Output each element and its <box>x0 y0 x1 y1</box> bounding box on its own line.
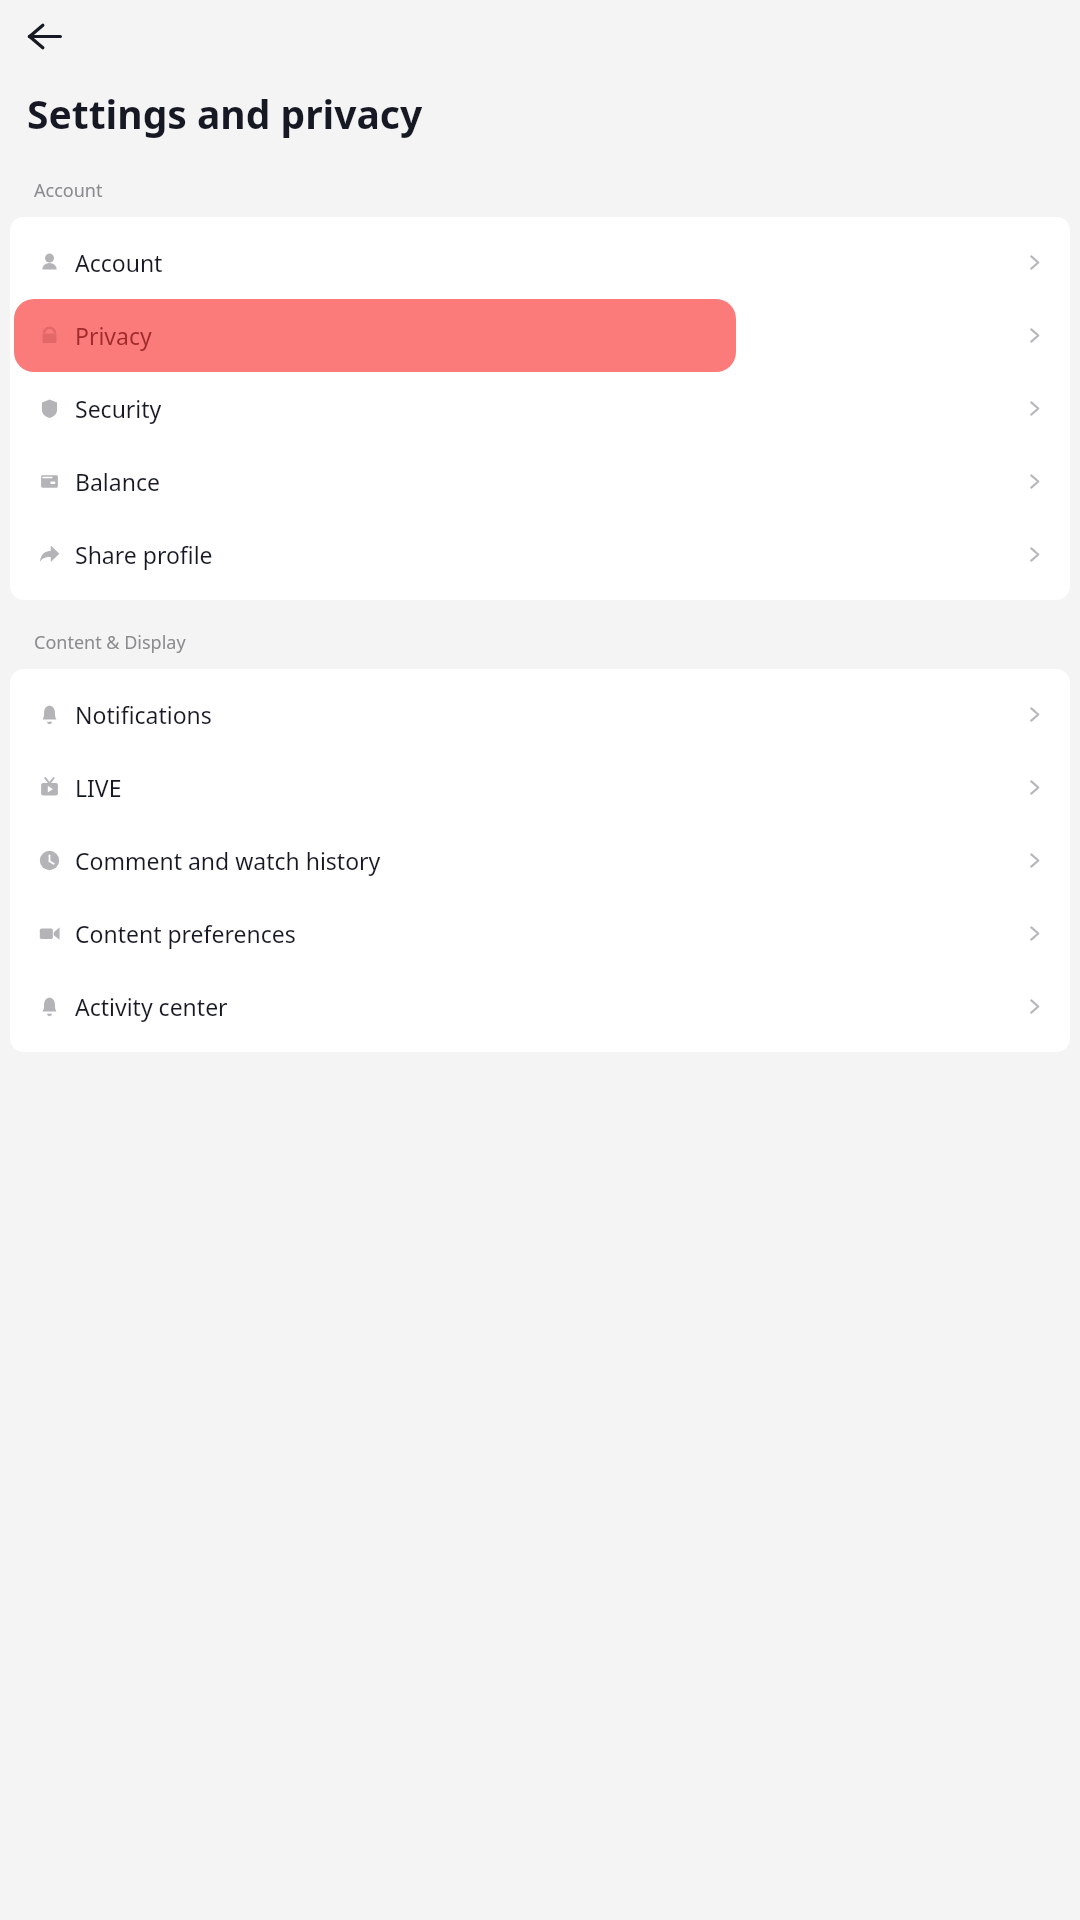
staticText: Content preferences <box>75 918 296 949</box>
staticText: Privacy <box>75 320 152 351</box>
button[interactable]: Privacy <box>14 299 736 372</box>
staticText: Balance <box>75 466 160 497</box>
staticText: Activity center <box>75 991 228 1022</box>
button[interactable]: Comment and watch history <box>14 824 1066 897</box>
staticText: LIVE <box>75 772 122 803</box>
button[interactable]: Security <box>14 372 1066 445</box>
staticText: Security <box>75 393 162 424</box>
staticText: Notifications <box>75 699 212 730</box>
button[interactable]: Notifications <box>14 678 1066 751</box>
button[interactable]: Account <box>14 226 1066 299</box>
staticText: Comment and watch history <box>75 845 381 876</box>
button[interactable]: Activity center <box>14 970 1066 1043</box>
button[interactable]: Balance <box>14 445 1066 518</box>
button[interactable]: Share profile <box>14 518 1066 591</box>
staticText: Content & Display <box>34 630 186 655</box>
staticText: Share profile <box>75 539 213 570</box>
button[interactable]: Back <box>13 5 75 67</box>
staticText: Account <box>34 178 103 203</box>
staticText: Settings and privacy <box>27 87 423 140</box>
button[interactable]: LIVE <box>14 751 1066 824</box>
button[interactable]: Content preferences <box>14 897 1066 970</box>
staticText: Account <box>75 247 163 278</box>
